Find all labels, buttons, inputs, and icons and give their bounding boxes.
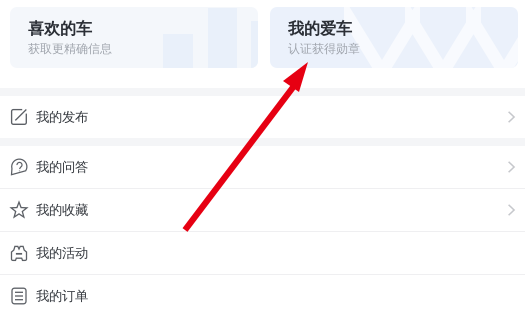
staticText: 我的活动 (36, 245, 88, 261)
button[interactable]: 我的活动 (0, 232, 525, 274)
staticText: 我的发布 (36, 109, 88, 125)
button[interactable]: 我的发布 (0, 96, 525, 138)
button[interactable]: 我的爱车 (270, 7, 518, 68)
button[interactable]: 喜欢的车 (10, 7, 258, 68)
staticText: 获取更精确信息 (28, 41, 112, 56)
button[interactable]: 我的订单 (0, 275, 525, 317)
staticText: 我的问答 (36, 159, 88, 175)
staticText: 我的收藏 (36, 202, 88, 218)
button[interactable]: 我的问答 (0, 146, 525, 188)
button[interactable]: 我的收藏 (0, 189, 525, 231)
staticText: 我的订单 (36, 288, 88, 304)
staticText: 认证获得勋章 (288, 41, 360, 56)
staticText: 喜欢的车 (28, 19, 92, 38)
staticText: 我的爱车 (288, 19, 352, 38)
